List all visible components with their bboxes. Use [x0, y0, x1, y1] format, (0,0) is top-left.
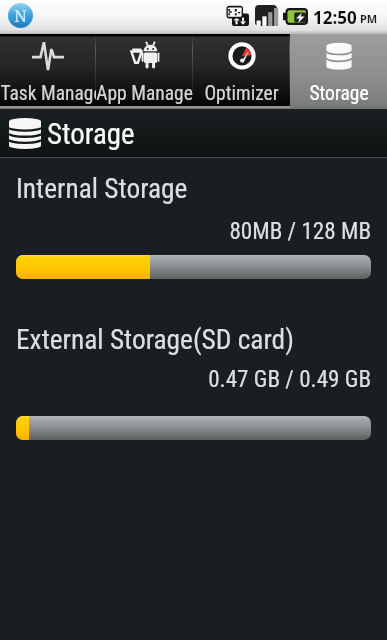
- staticText: App Manager: [96, 82, 193, 105]
- staticText: 80MB / 128 MB: [16, 218, 371, 245]
- staticText: External Storage(SD card): [16, 324, 294, 356]
- staticText: Storage: [47, 117, 135, 151]
- staticText: Internal Storage: [16, 173, 188, 205]
- staticText: 0.47 GB / 0.49 GB: [16, 366, 371, 393]
- staticText: Optimizer: [204, 82, 279, 105]
- button[interactable]: Storage: [290, 34, 387, 109]
- staticText: 12:50: [313, 6, 357, 29]
- staticText: Task Manager: [0, 82, 96, 105]
- staticText: Storage: [309, 82, 369, 105]
- staticText: PM: [360, 11, 378, 26]
- button[interactable]: Task Manager: [0, 34, 96, 109]
- button[interactable]: Optimizer: [193, 34, 290, 109]
- button[interactable]: App Manager: [96, 34, 193, 109]
- staticText: N: [14, 4, 27, 27]
